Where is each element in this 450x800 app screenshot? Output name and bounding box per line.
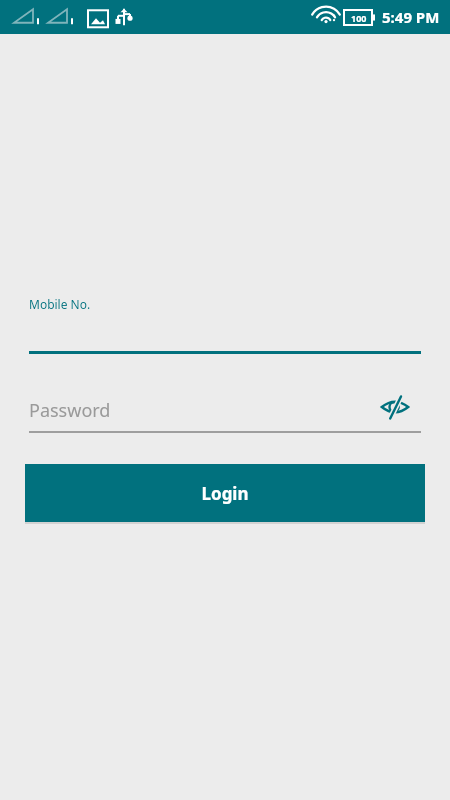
staticText: 100 (351, 12, 367, 24)
button[interactable]: Password (0, 386, 450, 438)
staticText: Password (29, 398, 111, 423)
staticText: Login (201, 482, 249, 505)
button[interactable]: Mobile No. (0, 292, 450, 354)
staticText: Mobile No. (29, 296, 91, 312)
staticText: 5:49 PM (382, 7, 440, 27)
button[interactable]: Login (25, 464, 425, 522)
button[interactable]: Show password (374, 390, 416, 424)
